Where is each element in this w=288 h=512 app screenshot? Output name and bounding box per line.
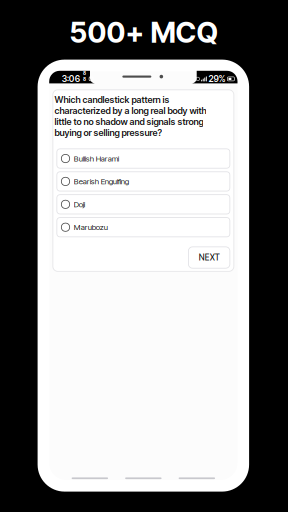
button[interactable]: Doji (57, 195, 230, 214)
staticText: Which candlestick pattern is characteriz… (54, 94, 206, 138)
staticText: 29% (208, 74, 225, 84)
staticText: 500+ MCQ (69, 15, 218, 50)
button[interactable]: Bullish Harami (57, 149, 230, 168)
staticText: Bearish Engulfing (74, 177, 129, 186)
button[interactable]: Marubozu (57, 218, 230, 237)
staticText: NEXT (199, 252, 220, 262)
staticText: 3:06 (62, 73, 80, 84)
button[interactable]: Bearish Engulfing (57, 172, 230, 191)
button[interactable]: NEXT (188, 247, 230, 268)
staticText: Doji (74, 200, 85, 209)
staticText: Bullish Harami (74, 154, 119, 163)
staticText: ··· (83, 82, 86, 87)
staticText: 88 (83, 70, 86, 82)
staticText: Marubozu (74, 222, 108, 232)
